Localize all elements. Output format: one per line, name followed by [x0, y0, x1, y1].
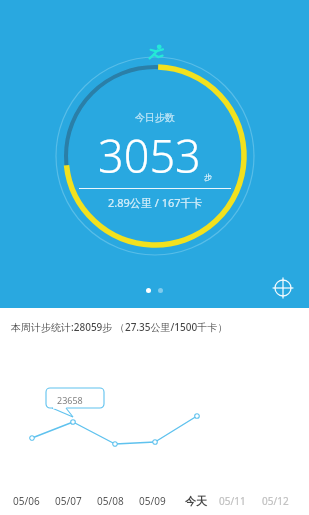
staticText: 今天	[185, 494, 207, 508]
button[interactable]: 05/08	[97, 494, 124, 508]
staticText: 05/09	[139, 494, 166, 508]
staticText: 05/11	[219, 494, 246, 508]
button[interactable]: 05/06	[13, 494, 40, 508]
staticText: 3053	[98, 125, 201, 186]
staticText: 步	[204, 172, 212, 182]
button[interactable]: 05/07	[55, 494, 82, 508]
button[interactable]: 05/09	[139, 494, 166, 508]
staticText: 05/12	[262, 494, 289, 508]
staticText: 05/07	[55, 494, 82, 508]
button[interactable]: 05/12	[262, 494, 289, 508]
staticText: 2.89公里 / 167千卡	[108, 195, 203, 210]
button[interactable]: 05/11	[219, 494, 246, 508]
staticText: 05/06	[13, 494, 40, 508]
staticText: 23658	[57, 394, 83, 406]
staticText: 本周计步统计:28059步 （27.35公里/1500千卡）	[11, 320, 228, 334]
button[interactable]	[158, 288, 163, 293]
staticText: 今日步数	[135, 111, 175, 124]
staticText: 05/08	[97, 494, 124, 508]
button[interactable]	[146, 288, 151, 293]
button[interactable]: Target	[271, 276, 295, 300]
button[interactable]: 今天	[185, 494, 207, 508]
